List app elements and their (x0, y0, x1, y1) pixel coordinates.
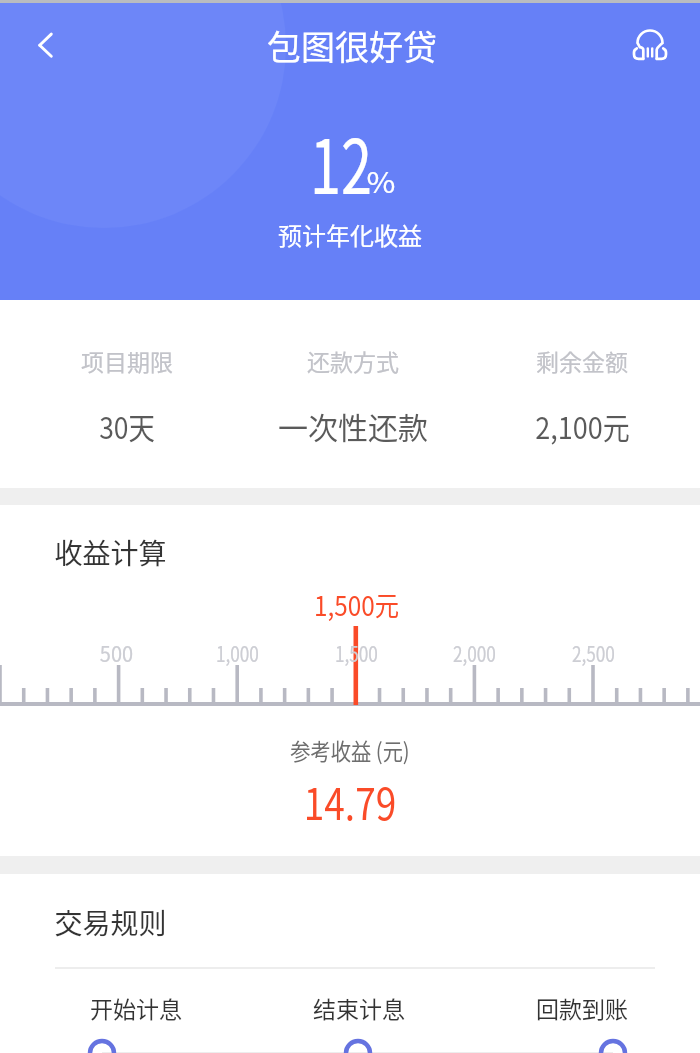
staticText: 交易规则 (54, 902, 167, 943)
staticText: 项目期限 (81, 344, 173, 377)
button[interactable]: Customer service (622, 16, 678, 72)
button[interactable] (471, 985, 693, 1053)
button[interactable]: Back (17, 17, 73, 73)
staticText: 12 (310, 107, 372, 216)
staticText: 2,100元 (535, 404, 630, 447)
button[interactable] (15, 300, 239, 486)
staticText: 2,500 (572, 638, 615, 668)
staticText: 回款到账 (536, 991, 628, 1024)
staticText: 结束计息 (313, 991, 405, 1024)
button[interactable] (470, 300, 694, 486)
staticText: 14.79 (304, 770, 396, 832)
staticText: 一次性还款 (278, 404, 428, 447)
staticText: % (366, 161, 395, 202)
staticText: 2,000 (453, 638, 496, 668)
staticText: 剩余金额 (536, 344, 628, 377)
staticText: 1,500 (335, 638, 378, 668)
staticText: 500 (100, 638, 133, 668)
staticText: 收益计算 (54, 532, 167, 573)
button[interactable] (248, 985, 470, 1053)
staticText: 包图很好贷 (267, 21, 437, 70)
staticText: 预计年化收益 (278, 217, 422, 252)
button[interactable] (241, 300, 465, 486)
staticText: 30天 (99, 404, 155, 447)
staticText: 1,500元 (314, 585, 399, 624)
button[interactable] (25, 985, 247, 1053)
staticText: 1,000 (216, 638, 259, 668)
staticText: 还款方式 (307, 344, 399, 377)
staticText: 开始计息 (90, 991, 182, 1024)
staticText: 参考收益 (元) (290, 733, 410, 766)
